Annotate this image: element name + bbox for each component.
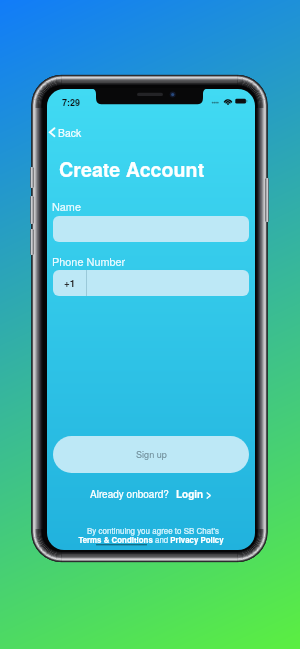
staticText: Phone Number	[52, 253, 126, 269]
button[interactable]: Already onboard?	[47, 486, 255, 501]
button[interactable]: Phone number input	[53, 270, 249, 296]
staticText: By continuing you agree to SB Chat's	[87, 525, 219, 536]
staticText: +1	[64, 276, 76, 290]
staticText: 7:29	[62, 96, 81, 109]
button[interactable]: Back	[48, 125, 82, 140]
button[interactable]: Sign up	[53, 436, 249, 473]
staticText: Terms & Conditions and Privacy Policy	[78, 534, 224, 545]
staticText: Sign up	[136, 448, 167, 461]
staticText: Login >	[176, 487, 212, 501]
staticText: Create Account	[59, 155, 205, 183]
staticText: Name	[52, 198, 81, 214]
staticText: Back	[58, 125, 82, 140]
button[interactable]: Name input	[53, 216, 249, 242]
staticText: Already onboard?	[90, 487, 169, 501]
button[interactable]: By continuing you agree to SB Chat's	[47, 525, 255, 547]
